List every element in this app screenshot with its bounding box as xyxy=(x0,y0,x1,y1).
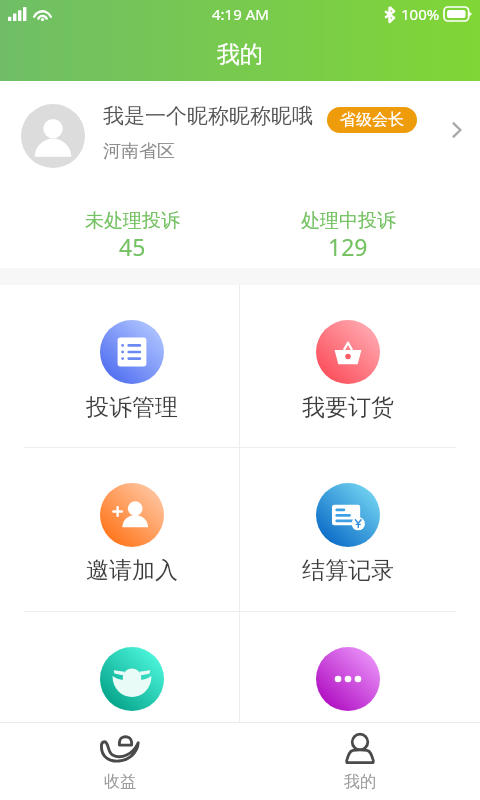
button[interactable]: 邀请加入 xyxy=(24,448,239,611)
button[interactable]: 结算记录 xyxy=(240,448,456,611)
button[interactable]: 我的 xyxy=(240,723,480,800)
button[interactable]: More xyxy=(24,612,239,722)
staticText: 投诉管理 xyxy=(86,393,178,422)
button[interactable]: 收益 xyxy=(0,723,240,800)
staticText: 河南省区 xyxy=(103,140,175,163)
staticText: 我的 xyxy=(344,772,376,792)
staticText: 45 xyxy=(119,231,146,262)
button[interactable]: 处理中投诉 xyxy=(240,190,456,268)
staticText: 129 xyxy=(328,231,368,262)
staticText: 我的 xyxy=(217,40,263,69)
button[interactable]: 未处理投诉 xyxy=(24,190,240,268)
staticText: 收益 xyxy=(104,772,136,792)
staticText: 省级会长 xyxy=(340,110,404,130)
staticText: 未处理投诉 xyxy=(85,209,180,233)
staticText: 邀请加入 xyxy=(86,556,178,585)
staticText: 我要订货 xyxy=(302,393,394,422)
button[interactable]: More xyxy=(240,612,456,722)
staticText: 我是一个昵称昵称昵哦 xyxy=(103,103,313,129)
button[interactable]: 我要订货 xyxy=(240,285,456,447)
staticText: 4:19 AM xyxy=(212,4,269,24)
staticText: 100% xyxy=(401,4,440,24)
staticText: 处理中投诉 xyxy=(301,209,396,233)
button[interactable]: 我是一个昵称昵称昵哦 xyxy=(0,81,480,190)
staticText: 结算记录 xyxy=(302,556,394,585)
button[interactable]: 投诉管理 xyxy=(24,285,239,447)
